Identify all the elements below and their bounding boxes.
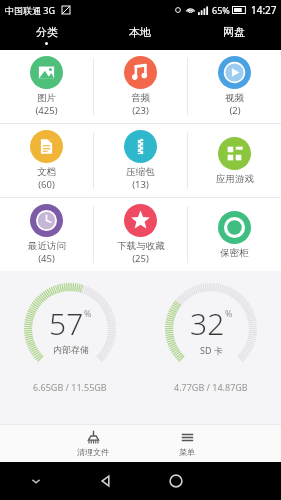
staticText: (45) xyxy=(38,252,55,265)
staticText: 内部存储 xyxy=(53,344,89,355)
button[interactable]: 压缩包 xyxy=(94,124,187,197)
staticText: 本地 xyxy=(129,25,151,39)
staticText: 分类 xyxy=(36,25,58,39)
button[interactable]: 32 xyxy=(140,281,281,393)
staticText: (23) xyxy=(132,104,149,117)
staticText: 14:27 xyxy=(251,3,277,17)
button[interactable]: 视频 xyxy=(188,50,281,123)
staticText: 65% xyxy=(212,4,230,16)
button[interactable]: 网盘 xyxy=(187,20,281,50)
button[interactable]: 本地 xyxy=(93,20,187,50)
staticText: 文档 xyxy=(37,166,56,178)
staticText: 音频 xyxy=(131,92,150,104)
staticText: (13) xyxy=(132,178,149,191)
button[interactable]: 分类 xyxy=(0,20,93,50)
button[interactable]: 最近访问 xyxy=(0,198,93,271)
staticText: (25) xyxy=(132,252,149,265)
staticText: 压缩包 xyxy=(126,166,155,178)
button[interactable]: Home xyxy=(141,462,211,500)
button[interactable]: 音频 xyxy=(94,50,187,123)
staticText: SD 卡 xyxy=(200,344,223,356)
staticText: 菜单 xyxy=(179,447,195,457)
staticText: 6.65GB / 11.55GB xyxy=(33,381,107,393)
staticText: 下载与收藏 xyxy=(117,240,165,252)
staticText: 中国联通 3G xyxy=(5,4,56,16)
staticText: (425) xyxy=(35,104,58,117)
staticText: 网盘 xyxy=(223,25,245,39)
staticText: % xyxy=(225,307,233,319)
button[interactable]: 文档 xyxy=(0,124,93,197)
button[interactable]: 菜单 xyxy=(140,425,234,462)
staticText: 清理文件 xyxy=(77,447,109,457)
staticText: 57 xyxy=(49,303,84,344)
button[interactable]: 保密柜 xyxy=(188,198,281,271)
staticText: 32 xyxy=(190,303,225,344)
button[interactable]: 57 xyxy=(0,281,140,393)
staticText: 最近访问 xyxy=(28,240,66,252)
button[interactable]: 下载与收藏 xyxy=(94,198,187,271)
staticText: % xyxy=(84,307,92,319)
staticText: 保密柜 xyxy=(220,247,249,259)
staticText: 图片 xyxy=(37,92,56,104)
button[interactable]: 应用游戏 xyxy=(188,124,281,197)
button[interactable]: Back xyxy=(71,462,141,500)
staticText: (2) xyxy=(229,104,241,117)
button[interactable]: Hide xyxy=(0,462,71,500)
button[interactable]: 清理文件 xyxy=(46,425,140,462)
staticText: 4.77GB / 14.87GB xyxy=(174,381,248,393)
staticText: 视频 xyxy=(225,92,244,104)
staticText: (60) xyxy=(38,178,55,191)
staticText: 应用游戏 xyxy=(216,173,254,185)
button[interactable]: 图片 xyxy=(0,50,93,123)
